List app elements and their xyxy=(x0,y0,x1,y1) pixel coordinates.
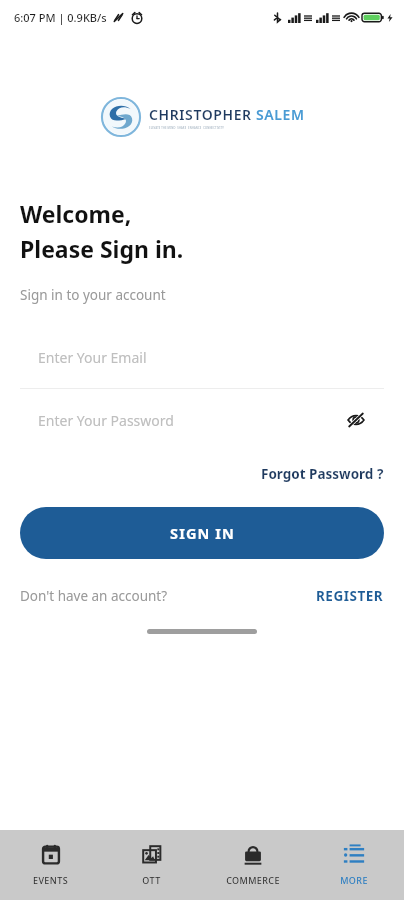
staticText: ELEVATE THE MIND SHARE ENHANCE CONNECTIV… xyxy=(149,126,224,130)
staticText: SALEM xyxy=(256,105,305,124)
button[interactable]: EVENTS xyxy=(0,830,101,900)
button[interactable]: Enter Your Email xyxy=(20,326,384,388)
staticText: Enter Your Password xyxy=(38,411,174,430)
staticText: Don't have an account? xyxy=(20,587,168,605)
staticText: Enter Your Email xyxy=(38,348,147,367)
staticText: Sign in to your account xyxy=(20,286,166,304)
button[interactable]: Forgot Password ? xyxy=(261,463,384,485)
staticText: COMMERCE xyxy=(226,874,280,886)
button[interactable]: REGISTER xyxy=(316,585,384,607)
button[interactable]: SIGN IN xyxy=(20,507,384,559)
button[interactable]: OTT xyxy=(101,830,202,900)
staticText: SIGN IN xyxy=(170,523,235,543)
button[interactable]: Enter Your Password xyxy=(20,389,384,451)
staticText: Welcome, xyxy=(20,198,132,229)
staticText: MORE xyxy=(340,874,368,886)
button[interactable]: Show password xyxy=(340,404,372,436)
staticText: OTT xyxy=(142,874,161,886)
staticText: 6:07 PM | 0.9KB/s xyxy=(14,10,107,25)
button[interactable]: COMMERCE xyxy=(202,830,303,900)
staticText: REGISTER xyxy=(316,587,384,605)
staticText: Please Sign in. xyxy=(20,233,184,264)
button[interactable]: MORE xyxy=(303,830,404,900)
staticText: CHRISTOPHER xyxy=(149,105,252,124)
staticText: Forgot Password ? xyxy=(261,465,384,483)
staticText: EVENTS xyxy=(33,874,68,886)
